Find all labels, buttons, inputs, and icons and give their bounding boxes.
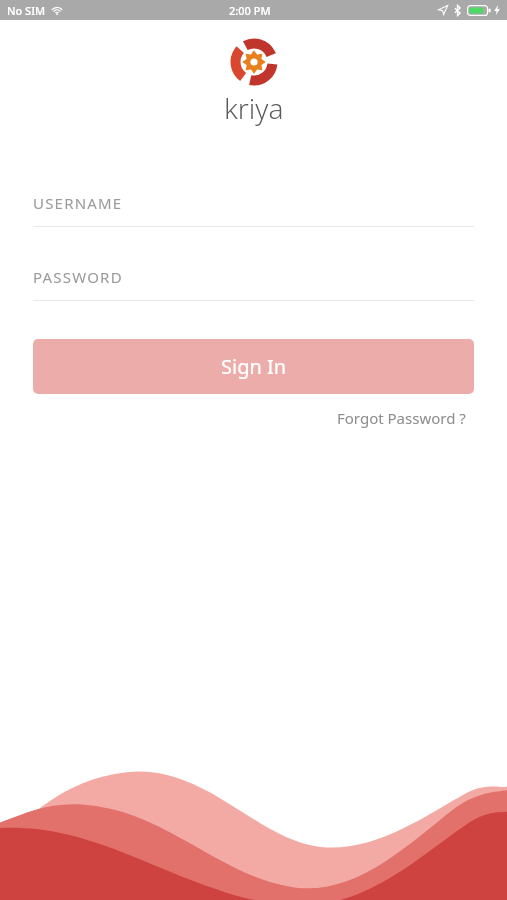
button[interactable]: Forgot Password ? [329, 403, 474, 433]
staticText: Forgot Password ? [337, 408, 466, 428]
staticText: PASSWORD [33, 267, 123, 287]
staticText: kriya [224, 89, 284, 127]
staticText: 2:00 PM [229, 3, 271, 18]
button[interactable]: Sign In [33, 339, 474, 394]
staticText: USERNAME [33, 193, 123, 213]
button[interactable]: PASSWORD [33, 253, 474, 301]
button[interactable]: USERNAME [33, 179, 474, 227]
staticText: Sign In [221, 353, 287, 380]
staticText: No SIM [7, 3, 46, 18]
